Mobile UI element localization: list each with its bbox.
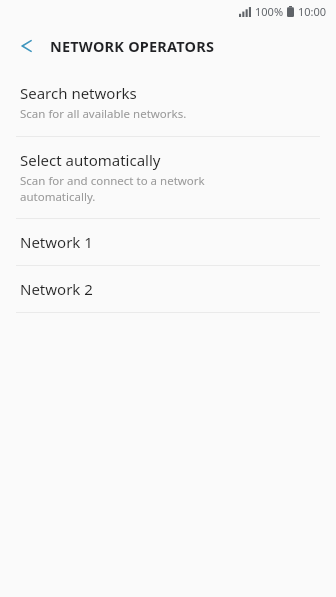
staticText: 100% (255, 4, 284, 19)
staticText: Network 1 (20, 232, 93, 252)
staticText: Scan for all available networks. (20, 106, 187, 122)
button[interactable]: Search networks (0, 70, 336, 136)
staticText: NETWORK OPERATORS (50, 36, 215, 56)
staticText: 10:00 (298, 4, 327, 19)
staticText: Network 2 (20, 279, 93, 299)
staticText: Search networks (20, 83, 137, 103)
staticText: Select automatically (20, 150, 161, 170)
staticText: Scan for and connect to a network automa… (20, 173, 205, 204)
button[interactable]: Network 2 (0, 266, 336, 312)
button[interactable]: Select automatically (0, 137, 336, 218)
button[interactable]: Network 1 (0, 219, 336, 265)
button[interactable]: Back (8, 28, 44, 64)
